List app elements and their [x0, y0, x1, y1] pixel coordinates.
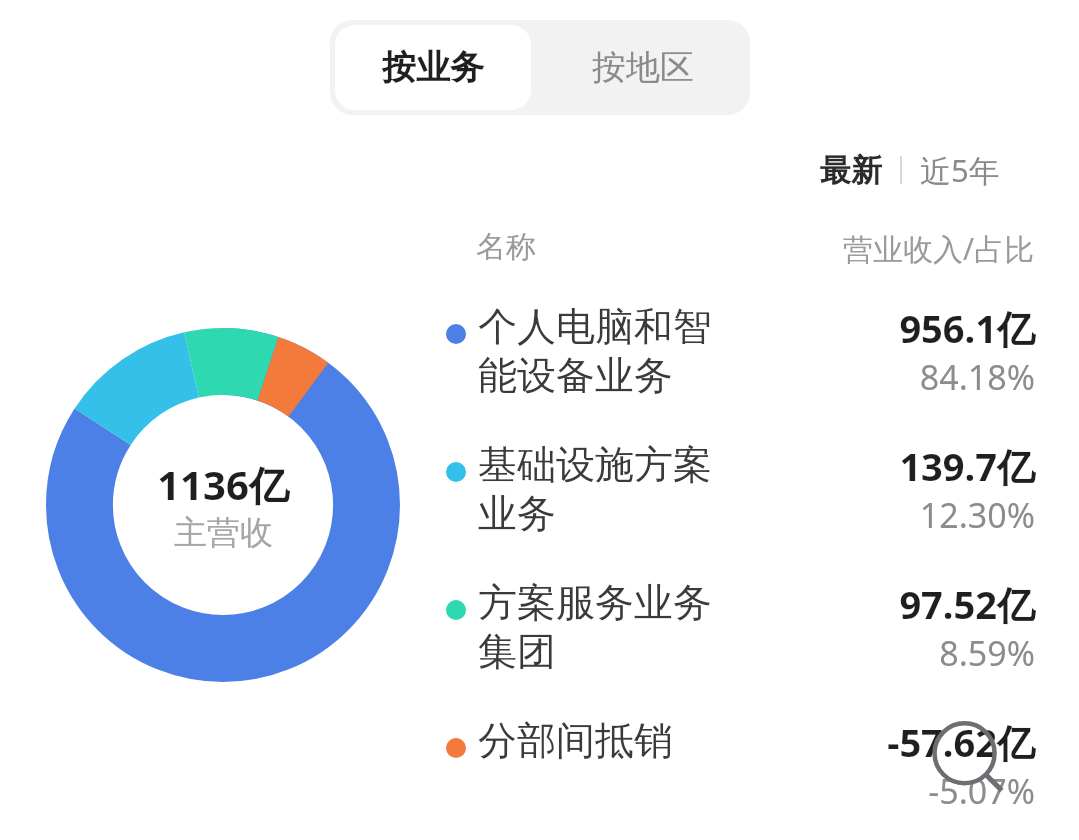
- button[interactable]: 分部间抵销: [440, 716, 1035, 840]
- staticText: 基础设施方案: [478, 440, 712, 489]
- staticText: 营业收入/占比: [843, 228, 1035, 269]
- staticText: 8.59%: [939, 630, 1035, 676]
- staticText: 能设备业务: [478, 351, 673, 400]
- staticText: -57.62亿: [887, 716, 1035, 768]
- staticText: 956.1亿: [899, 302, 1035, 354]
- button[interactable]: 基础设施方案: [440, 440, 1035, 572]
- staticText: 按地区: [592, 46, 694, 89]
- staticText: 139.7亿: [899, 440, 1035, 492]
- staticText: 集团: [478, 627, 556, 676]
- button[interactable]: 按业务: [335, 25, 531, 110]
- button[interactable]: 按地区: [540, 25, 745, 110]
- button[interactable]: 近5年: [920, 145, 1000, 195]
- staticText: 97.52亿: [899, 578, 1035, 630]
- staticText: 1136亿: [157, 457, 289, 512]
- staticText: 个人电脑和智: [478, 302, 712, 351]
- staticText: 主营收: [174, 512, 273, 554]
- button[interactable]: 方案服务业务: [440, 578, 1035, 710]
- staticText: 按业务: [382, 46, 484, 89]
- button[interactable]: 个人电脑和智: [440, 302, 1035, 434]
- staticText: 近5年: [920, 149, 1000, 191]
- button[interactable]: Zoom: [925, 712, 1011, 798]
- staticText: 最新: [820, 151, 882, 190]
- staticText: 84.18%: [919, 354, 1035, 400]
- staticText: 名称: [476, 228, 536, 266]
- staticText: 12.30%: [919, 492, 1035, 538]
- staticText: 业务: [478, 489, 556, 538]
- staticText: 方案服务业务: [478, 578, 712, 627]
- staticText: 分部间抵销: [478, 716, 673, 765]
- button[interactable]: 最新: [820, 145, 882, 195]
- staticText: -5.07%: [928, 768, 1035, 814]
